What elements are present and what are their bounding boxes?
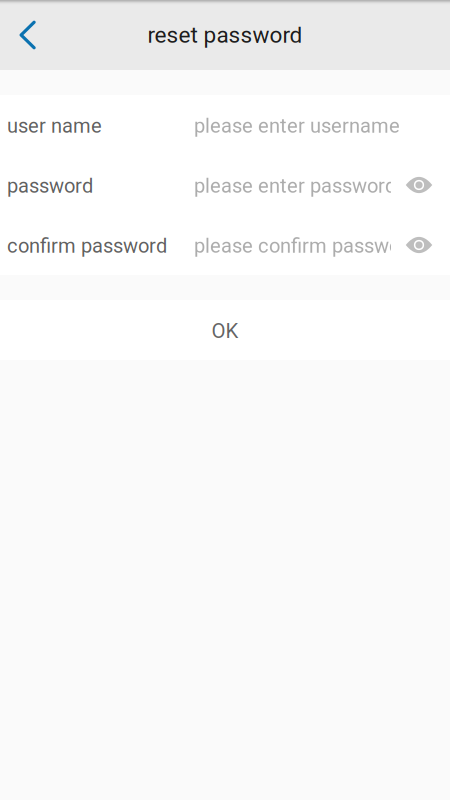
button[interactable]: user name: [0, 95, 450, 155]
button[interactable]: Show password: [397, 159, 441, 211]
staticText: confirm password: [7, 234, 167, 258]
staticText: please confirm password: [194, 234, 418, 258]
staticText: reset password: [147, 22, 302, 48]
staticText: OK: [211, 319, 238, 343]
button[interactable]: OK: [0, 300, 450, 360]
staticText: password: [7, 174, 93, 198]
button[interactable]: Back: [0, 0, 54, 70]
staticText: user name: [7, 114, 102, 138]
button[interactable]: password: [0, 155, 450, 215]
button[interactable]: Show password: [397, 219, 441, 271]
button[interactable]: confirm password: [0, 215, 450, 275]
staticText: please enter password: [194, 174, 396, 198]
staticText: please enter username: [194, 114, 400, 138]
